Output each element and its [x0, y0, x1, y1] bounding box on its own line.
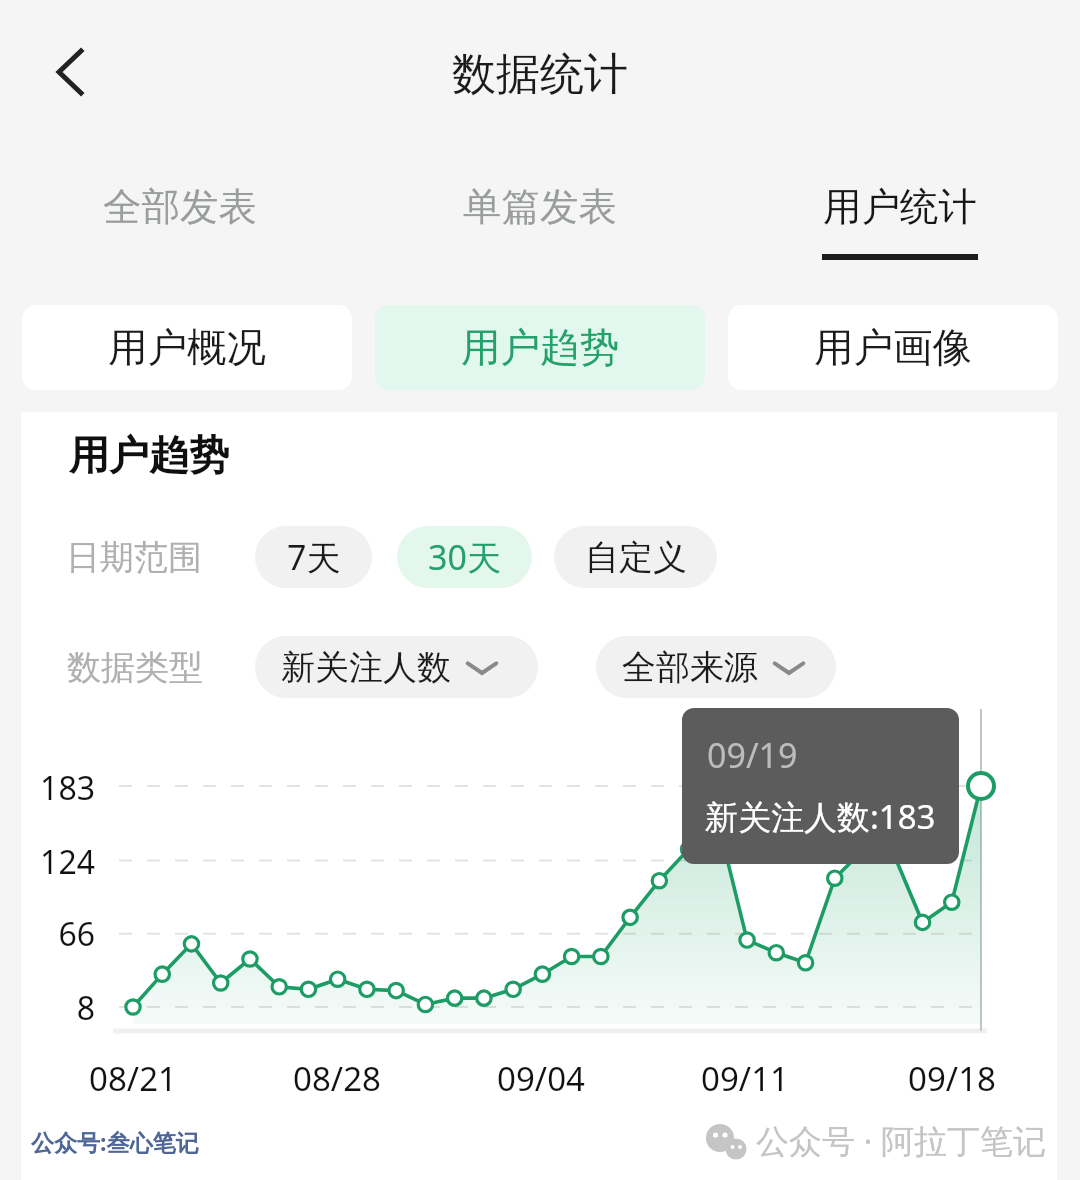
staticText: 用户概况: [108, 323, 266, 373]
staticText: 用户趋势: [69, 430, 229, 480]
staticText: 新关注人数: [281, 646, 451, 689]
button[interactable]: 用户统计: [720, 183, 1080, 278]
staticText: 数据统计: [0, 47, 1080, 102]
staticText: 09/11: [655, 1056, 835, 1101]
staticText: 09/19: [707, 732, 798, 778]
staticText: 30天: [428, 534, 501, 580]
staticText: 7天: [287, 534, 341, 580]
button[interactable]: 用户趋势: [375, 305, 705, 390]
button[interactable]: 用户概况: [22, 305, 352, 390]
staticText: 09/04: [451, 1056, 631, 1101]
button[interactable]: Back: [34, 38, 106, 106]
button[interactable]: 7天: [255, 526, 372, 588]
staticText: 公众号:叁心笔记: [31, 1126, 199, 1157]
staticText: 08/21: [43, 1056, 223, 1101]
staticText: 全部来源: [622, 646, 758, 689]
staticText: 公众号 · 阿拉丁笔记: [756, 1118, 1047, 1163]
staticText: 单篇发表: [463, 183, 617, 232]
button[interactable]: 30天: [397, 526, 532, 588]
staticText: 用户趋势: [461, 323, 619, 373]
staticText: 183: [0, 766, 95, 810]
staticText: 用户统计: [823, 183, 977, 232]
staticText: 用户画像: [814, 323, 972, 373]
button[interactable]: 单篇发表: [360, 183, 720, 278]
staticText: 8: [0, 986, 95, 1030]
button[interactable]: 新关注人数: [255, 636, 538, 698]
staticText: 08/28: [247, 1056, 427, 1101]
staticText: 新关注人数:183: [705, 794, 936, 839]
staticText: 66: [0, 912, 95, 956]
staticText: 数据类型: [67, 646, 203, 689]
button[interactable]: 用户画像: [728, 305, 1058, 390]
staticText: 124: [0, 840, 95, 884]
staticText: 日期范围: [66, 536, 202, 579]
button[interactable]: 全部发表: [0, 183, 360, 278]
staticText: 全部发表: [103, 183, 257, 232]
staticText: 自定义: [585, 536, 687, 579]
staticText: 09/18: [862, 1056, 1042, 1101]
button[interactable]: 自定义: [554, 526, 717, 588]
button[interactable]: 全部来源: [596, 636, 836, 698]
